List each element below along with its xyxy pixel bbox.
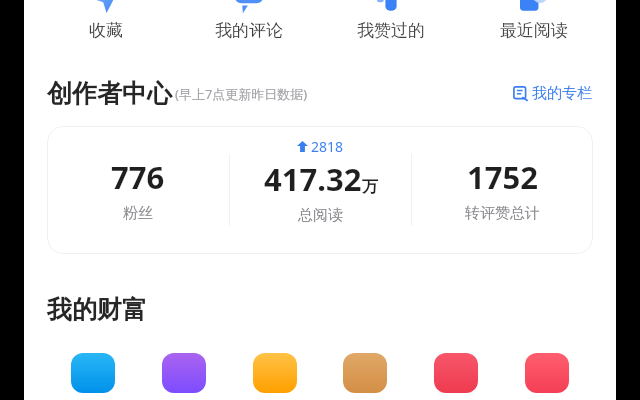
button[interactable]: 我的评论: [189, 0, 309, 49]
button[interactable]: 最近阅读: [474, 0, 594, 49]
staticText: 总阅读: [298, 206, 343, 225]
button[interactable]: 收藏: [46, 0, 166, 49]
staticText: 转评赞总计: [465, 204, 540, 223]
staticText: 我赞过的: [357, 20, 425, 41]
other: 最近阅读: [520, 0, 548, 14]
button[interactable]: 我赞过的: [331, 0, 451, 49]
staticText: 粉丝: [123, 204, 153, 223]
other: 收藏: [92, 0, 120, 14]
button[interactable]: 776: [47, 126, 593, 254]
staticText: 我的财富: [47, 294, 147, 325]
staticText: 1752: [467, 156, 538, 198]
staticText: 417.32: [264, 158, 362, 200]
staticText: 创作者中心: [47, 78, 172, 109]
button[interactable]: 财富入口: [71, 353, 115, 393]
other: 我赞过的: [377, 0, 405, 14]
button[interactable]: 财富入口: [434, 353, 478, 393]
button[interactable]: 财富入口: [253, 353, 297, 393]
staticText: (早上7点更新昨日数据): [175, 85, 308, 103]
button[interactable]: 我的专栏: [509, 80, 596, 107]
staticText: 万: [362, 177, 378, 197]
staticText: 我的专栏: [532, 84, 592, 103]
button[interactable]: 财富入口: [343, 353, 387, 393]
staticText: 776: [111, 156, 165, 198]
staticText: 我的评论: [215, 20, 283, 41]
other: 我的评论: [235, 0, 263, 14]
staticText: 收藏: [89, 20, 123, 41]
button[interactable]: 财富入口: [525, 353, 569, 393]
staticText: 2818: [311, 137, 344, 156]
staticText: 最近阅读: [500, 20, 568, 41]
button[interactable]: 财富入口: [162, 353, 206, 393]
